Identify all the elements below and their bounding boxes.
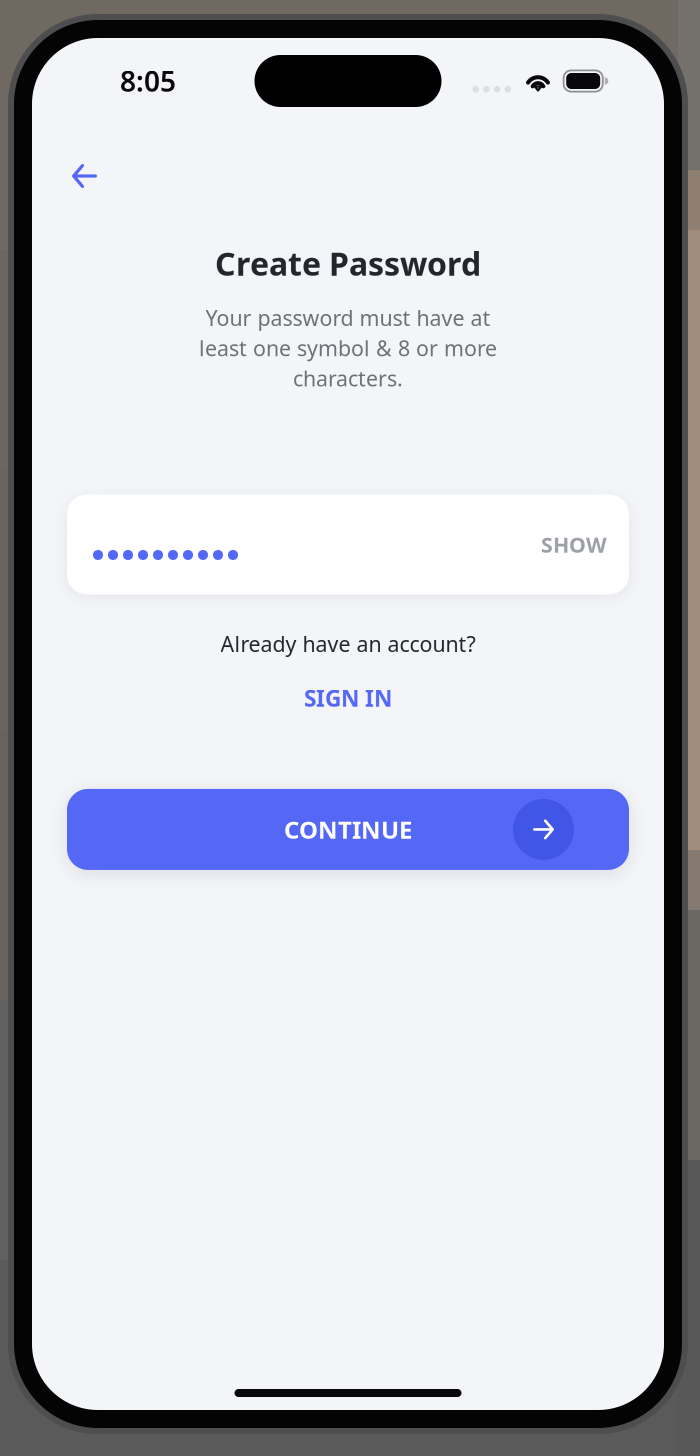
button[interactable]: Back xyxy=(56,149,113,203)
staticText: SIGN IN xyxy=(304,683,392,713)
staticText: characters. xyxy=(293,364,403,392)
button[interactable]: SIGN IN xyxy=(288,674,408,722)
staticText: Already have an account? xyxy=(220,629,475,658)
button[interactable]: SHOW xyxy=(523,516,607,573)
button[interactable]: CONTINUE xyxy=(67,789,629,870)
staticText: least one symbol & 8 or more xyxy=(199,334,497,362)
staticText: Create Password xyxy=(215,242,481,284)
staticText: Your password must have at xyxy=(205,303,490,332)
staticText: SHOW xyxy=(541,530,607,559)
staticText: 8:05 xyxy=(120,62,176,100)
staticText: CONTINUE xyxy=(284,813,412,845)
